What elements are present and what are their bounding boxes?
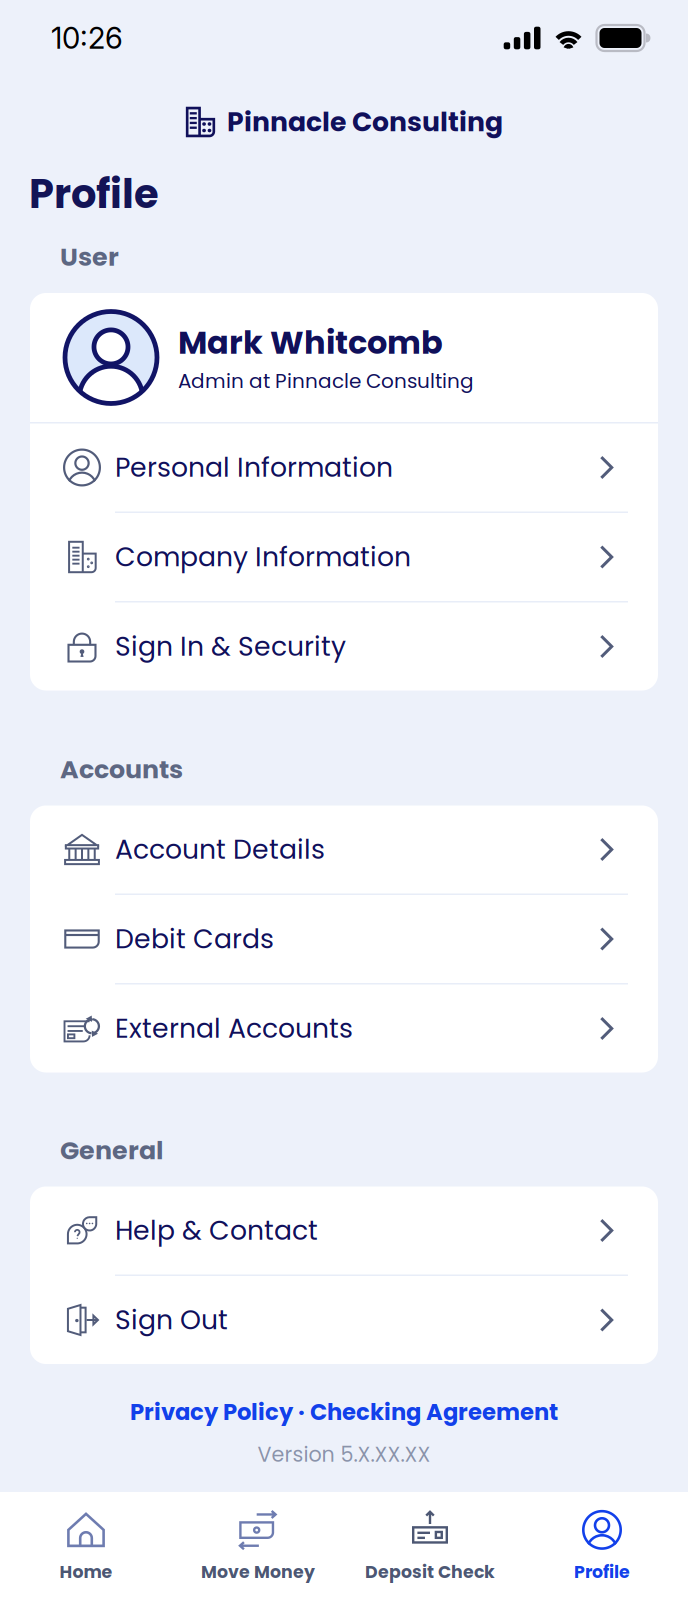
staticText: External Accounts xyxy=(115,1010,353,1047)
button[interactable]: Privacy Policy xyxy=(130,1396,293,1428)
staticText: · xyxy=(293,1396,310,1428)
staticText: Move Money xyxy=(201,1560,315,1584)
button[interactable]: External Accounts xyxy=(30,984,658,1072)
staticText: Sign In & Security xyxy=(115,628,346,665)
button[interactable]: Deposit Check xyxy=(344,1492,516,1600)
staticText: User xyxy=(60,239,119,275)
staticText: Version 5.X.XX.XX xyxy=(257,1440,430,1469)
staticText: Deposit Check xyxy=(365,1560,495,1584)
button[interactable]: Personal Information xyxy=(30,423,658,511)
staticText: Admin at Pinnacle Consulting xyxy=(178,367,474,395)
staticText: Debit Cards xyxy=(115,920,274,958)
button[interactable]: Sign Out xyxy=(30,1276,658,1364)
button[interactable]: Company Information xyxy=(30,513,658,601)
button[interactable]: Account Details xyxy=(30,805,658,893)
staticText: Pinnacle Consulting xyxy=(227,103,503,141)
staticText: Checking Agreement xyxy=(310,1396,558,1428)
button[interactable]: Mark Whitcomb xyxy=(30,293,658,422)
button[interactable]: Sign In & Security xyxy=(30,602,658,690)
staticText: Privacy Policy xyxy=(130,1396,293,1428)
staticText: Profile xyxy=(574,1560,630,1584)
button[interactable]: Home xyxy=(0,1492,172,1600)
staticText: Account Details xyxy=(115,831,325,868)
staticText: Company Information xyxy=(115,538,411,576)
button[interactable]: Profile xyxy=(516,1492,688,1600)
staticText: Home xyxy=(59,1560,112,1584)
button[interactable]: Move Money xyxy=(172,1492,344,1600)
staticText: Help & Contact xyxy=(115,1212,318,1249)
staticText: General xyxy=(60,1133,163,1168)
staticText: Mark Whitcomb xyxy=(178,320,443,365)
button[interactable]: Debit Cards xyxy=(30,895,658,983)
button[interactable]: Help & Contact xyxy=(30,1186,658,1274)
staticText: 10:26 xyxy=(51,20,123,56)
staticText: Personal Information xyxy=(115,449,393,486)
button[interactable]: Checking Agreement xyxy=(310,1396,558,1428)
staticText: Accounts xyxy=(60,752,183,787)
staticText: Profile xyxy=(29,166,159,222)
staticText: Sign Out xyxy=(115,1301,228,1339)
